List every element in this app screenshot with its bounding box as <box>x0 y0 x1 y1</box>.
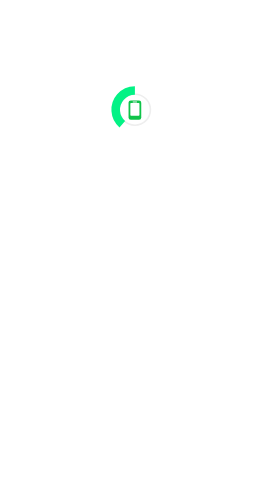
other: Connecting to phone, please wait <box>0 0 270 480</box>
